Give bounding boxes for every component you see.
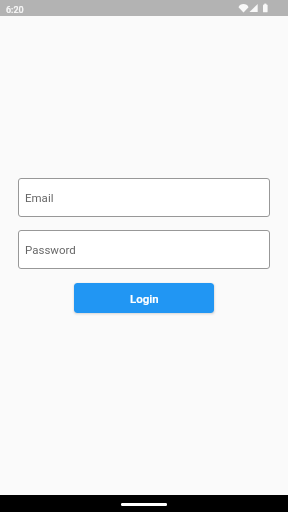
staticText: Password: [25, 243, 76, 256]
staticText: Email: [25, 191, 54, 204]
staticText: 6:20: [6, 5, 24, 16]
staticText: Login: [130, 292, 159, 305]
